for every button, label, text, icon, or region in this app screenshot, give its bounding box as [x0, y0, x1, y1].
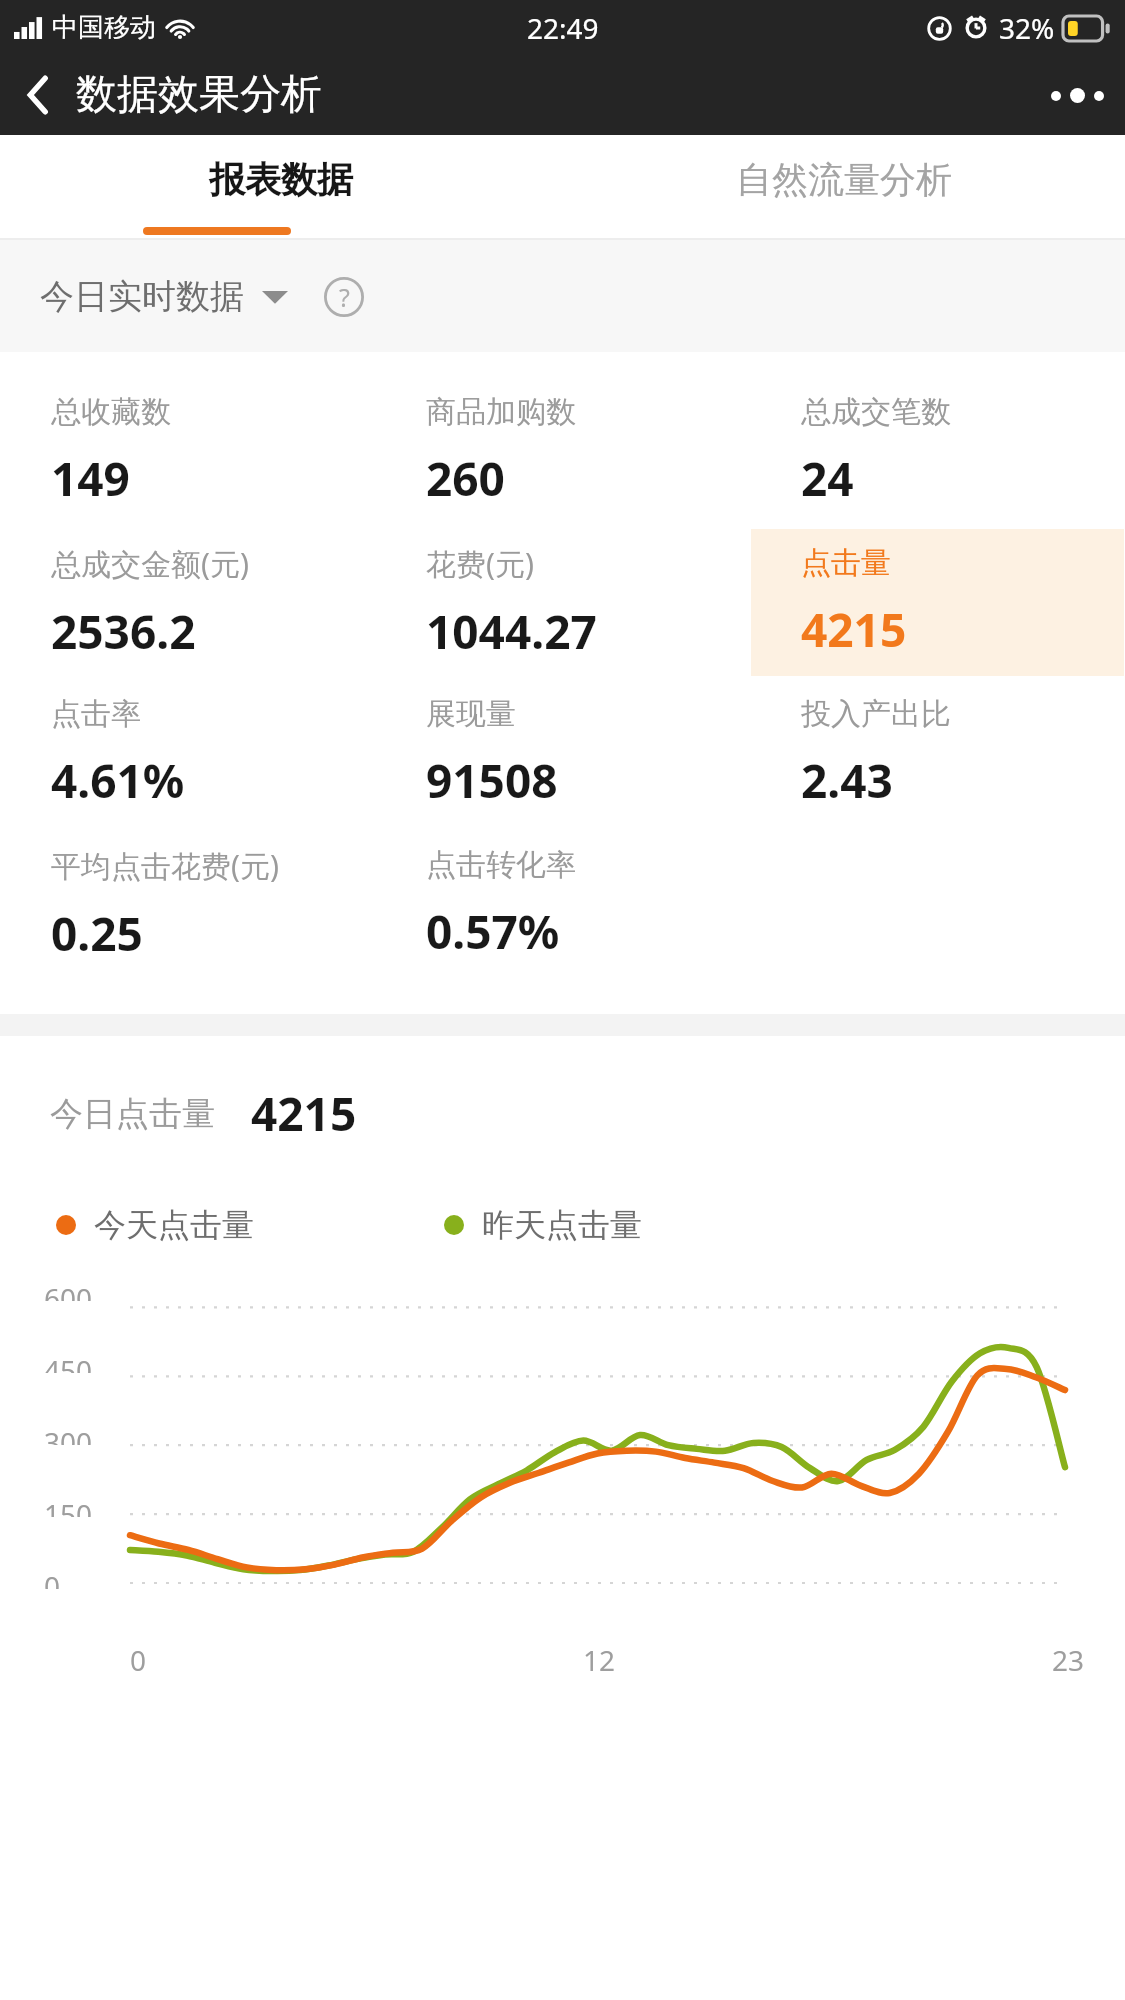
button[interactable]: 花费(元)	[376, 529, 749, 676]
button[interactable]: 展现量	[376, 680, 749, 827]
button[interactable]: 点击率	[1, 680, 374, 827]
staticText: 2.43	[801, 749, 893, 812]
staticText: 2536.2	[51, 600, 196, 663]
button[interactable]: 总成交笔数	[751, 378, 1124, 525]
staticText: 260	[426, 447, 505, 510]
staticText: 总成交金额(元)	[51, 543, 249, 584]
staticText: 4215	[801, 598, 907, 661]
button[interactable]: 报表数据	[0, 135, 562, 240]
staticText: 商品加购数	[426, 393, 576, 431]
staticText: 4.61%	[51, 749, 185, 812]
button[interactable]: 平均点击花费(元)	[1, 831, 374, 978]
button[interactable]: 投入产出比	[751, 680, 1124, 827]
staticText: 点击量	[801, 544, 891, 582]
staticText: 23	[1052, 1641, 1085, 1679]
staticText: 4215	[251, 1082, 357, 1145]
staticText: 昨天点击量	[482, 1205, 642, 1245]
staticText: 今日点击量	[50, 1093, 215, 1135]
staticText: 报表数据	[209, 157, 353, 202]
button[interactable]: 点击转化率	[376, 831, 749, 978]
button[interactable]: 自然流量分析	[562, 135, 1125, 240]
staticText: 总收藏数	[51, 393, 171, 431]
button[interactable]: 今日实时数据	[26, 265, 302, 328]
button[interactable]: 商品加购数	[376, 378, 749, 525]
staticText: 点击转化率	[426, 846, 576, 884]
button[interactable]: 总收藏数	[1, 378, 374, 525]
staticText: 22:49	[527, 9, 599, 47]
staticText: 花费(元)	[426, 543, 534, 584]
staticText: 32%	[999, 9, 1055, 47]
staticText: 24	[801, 447, 854, 510]
button[interactable]: More options	[1029, 55, 1125, 135]
staticText: 1044.27	[426, 600, 597, 663]
staticText: 0.57%	[426, 900, 560, 963]
button[interactable]: Help	[318, 271, 370, 323]
staticText: 今日实时数据	[40, 275, 244, 318]
staticText: 总成交笔数	[801, 393, 951, 431]
button[interactable]: 点击量	[751, 529, 1124, 676]
button[interactable]: 今日点击量	[50, 1082, 1125, 1145]
staticText: 0.25	[51, 902, 143, 965]
staticText: 平均点击花费(元)	[51, 845, 279, 886]
staticText: 450	[44, 1351, 93, 1373]
button[interactable]: 总成交金额(元)	[1, 529, 374, 676]
staticText: 中国移动	[52, 11, 156, 44]
staticText: 0	[130, 1641, 147, 1679]
staticText: 自然流量分析	[736, 157, 952, 202]
staticText: 展现量	[426, 695, 516, 733]
staticText: 今天点击量	[94, 1205, 254, 1245]
staticText: 300	[44, 1423, 93, 1445]
button[interactable]: Back	[0, 55, 76, 135]
staticText: 150	[44, 1495, 93, 1517]
staticText: 数据效果分析	[76, 69, 322, 121]
staticText: 91508	[426, 749, 558, 812]
staticText: 点击率	[51, 695, 141, 733]
staticText: ?	[339, 280, 350, 314]
staticText: 149	[51, 447, 130, 510]
staticText: 0	[44, 1567, 61, 1589]
staticText: 投入产出比	[801, 695, 951, 733]
staticText: 600	[44, 1279, 93, 1301]
staticText: 12	[583, 1641, 616, 1679]
